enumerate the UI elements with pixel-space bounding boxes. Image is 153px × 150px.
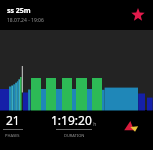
button[interactable]: 21 <box>0 112 25 142</box>
staticText: ss 25m <box>7 6 31 16</box>
button[interactable]: Favorite <box>127 4 149 26</box>
button[interactable] <box>0 30 153 110</box>
staticText: 21 <box>6 112 20 128</box>
staticText: 1:19:20 <box>51 112 92 128</box>
staticText: 18.07.24 - 19:06 <box>7 17 44 24</box>
staticText: PHASES <box>5 133 20 138</box>
staticText: h <box>92 121 97 128</box>
button[interactable]: App logo <box>119 115 141 137</box>
staticText: DURATION <box>64 133 85 138</box>
button[interactable]: 1:19:20 <box>49 112 99 142</box>
